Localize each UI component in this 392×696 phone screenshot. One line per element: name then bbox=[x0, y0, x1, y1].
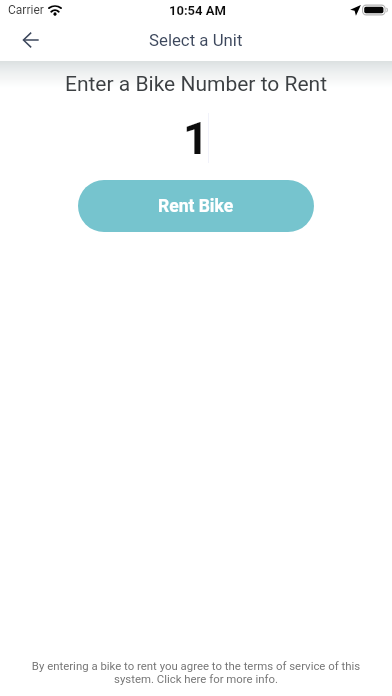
staticText: 10:54 AM bbox=[169, 3, 226, 18]
staticText: By entering a bike to rent you agree to … bbox=[25, 659, 367, 686]
staticText: Rent Bike bbox=[158, 196, 234, 217]
button[interactable]: Back bbox=[8, 20, 53, 59]
button[interactable]: Rent Bike bbox=[78, 180, 314, 232]
button[interactable]: By entering a bike to rent you agree to … bbox=[25, 659, 367, 686]
staticText: Enter a Bike Number to Rent bbox=[0, 72, 392, 97]
staticText: Select a Unit bbox=[149, 30, 243, 50]
staticText: Carrier bbox=[8, 3, 44, 17]
staticText: 1 bbox=[183, 112, 209, 165]
